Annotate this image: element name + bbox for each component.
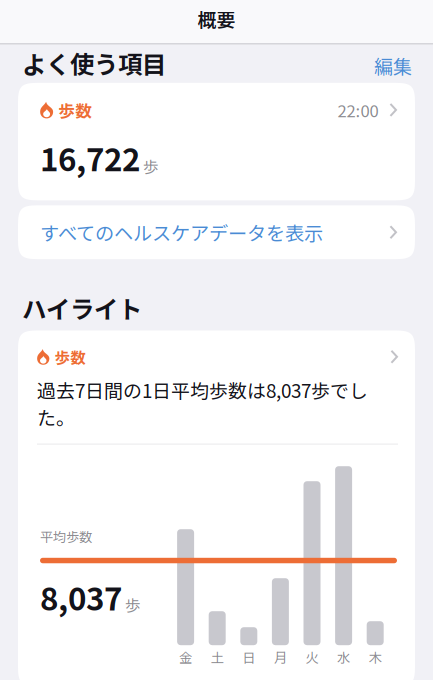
- staticText: 22:00: [337, 98, 378, 122]
- staticText: 過去7日間の1日平均歩数は8,037歩でした。: [37, 376, 368, 431]
- button[interactable]: 歩数: [18, 330, 415, 444]
- staticText: 歩数: [54, 345, 86, 368]
- staticText: 8,037: [40, 574, 122, 620]
- button[interactable]: すべてのヘルスケアデータを表示: [18, 205, 415, 259]
- staticText: 歩数: [58, 98, 92, 122]
- staticText: 歩: [143, 155, 159, 177]
- staticText: 編集: [374, 52, 412, 79]
- staticText: 金: [179, 647, 192, 666]
- staticText: 木: [369, 647, 382, 666]
- staticText: ハイライト: [22, 290, 142, 325]
- staticText: 16,722: [40, 135, 140, 180]
- staticText: 月: [274, 647, 287, 666]
- staticText: 土: [211, 647, 224, 666]
- staticText: 概要: [197, 5, 235, 32]
- button[interactable]: 歩数: [18, 83, 415, 200]
- staticText: 歩: [125, 593, 141, 616]
- button[interactable]: 編集: [374, 52, 412, 79]
- staticText: 水: [337, 647, 350, 666]
- staticText: よく使う項目: [22, 45, 166, 81]
- staticText: すべてのヘルスケアデータを表示: [40, 218, 323, 246]
- staticText: 日: [242, 647, 255, 666]
- staticText: 火: [305, 647, 318, 666]
- staticText: 平均歩数: [40, 526, 92, 546]
